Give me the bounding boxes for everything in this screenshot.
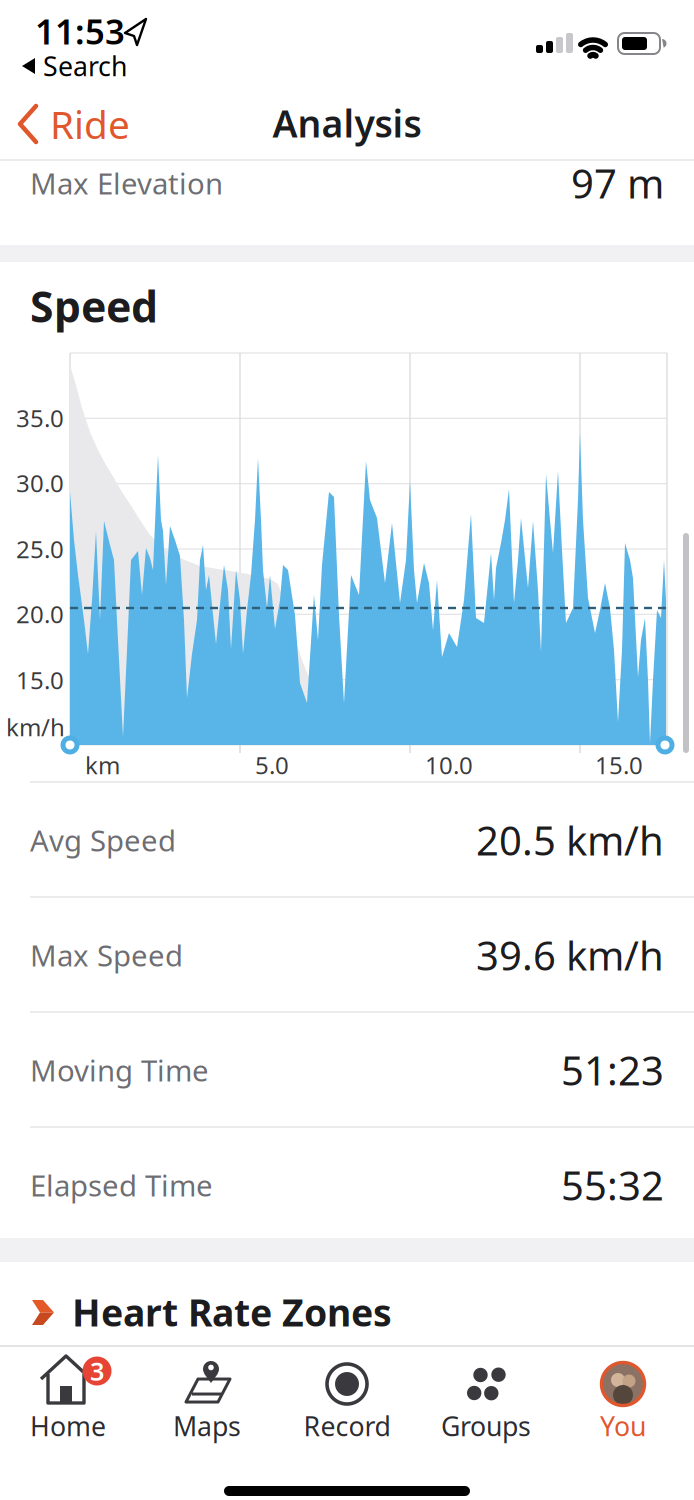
- staticText: 3: [90, 1354, 104, 1388]
- staticText: 35.0: [16, 402, 64, 434]
- button[interactable]: Record: [282, 1348, 412, 1448]
- staticText: Search: [43, 48, 127, 84]
- staticText: 39.6 km/h: [476, 928, 664, 981]
- button[interactable]: You: [558, 1348, 688, 1448]
- button[interactable]: Groups: [421, 1348, 551, 1448]
- staticText: Ride: [50, 98, 130, 150]
- staticText: Max Elevation: [30, 163, 223, 202]
- staticText: 30.0: [16, 467, 64, 499]
- staticText: Maps: [173, 1408, 241, 1444]
- staticText: 15.0: [595, 749, 643, 781]
- staticText: 97 m: [571, 156, 664, 209]
- button[interactable]: 3: [3, 1348, 133, 1448]
- staticText: Speed: [30, 278, 158, 334]
- staticText: Record: [303, 1408, 390, 1444]
- staticText: Moving Time: [30, 1050, 209, 1089]
- staticText: Home: [30, 1408, 106, 1444]
- staticText: Avg Speed: [30, 820, 176, 859]
- staticText: km/h: [6, 711, 65, 743]
- staticText: 55:32: [561, 1158, 664, 1211]
- staticText: You: [600, 1408, 646, 1444]
- staticText: Elapsed Time: [30, 1165, 213, 1204]
- staticText: 51:23: [561, 1043, 664, 1096]
- staticText: 20.5 km/h: [476, 813, 664, 866]
- staticText: km: [85, 749, 120, 781]
- staticText: Groups: [441, 1408, 531, 1444]
- staticText: 5.0: [255, 749, 289, 781]
- button[interactable]: Maps: [142, 1348, 272, 1448]
- staticText: Max Speed: [30, 935, 183, 974]
- staticText: 11:53: [35, 8, 125, 54]
- staticText: Heart Rate Zones: [72, 1287, 392, 1337]
- staticText: 25.0: [16, 533, 64, 565]
- button[interactable]: Ride: [0, 94, 160, 154]
- staticText: 15.0: [16, 664, 64, 696]
- staticText: 10.0: [425, 749, 473, 781]
- staticText: 20.0: [16, 598, 64, 630]
- staticText: Analysis: [272, 98, 421, 148]
